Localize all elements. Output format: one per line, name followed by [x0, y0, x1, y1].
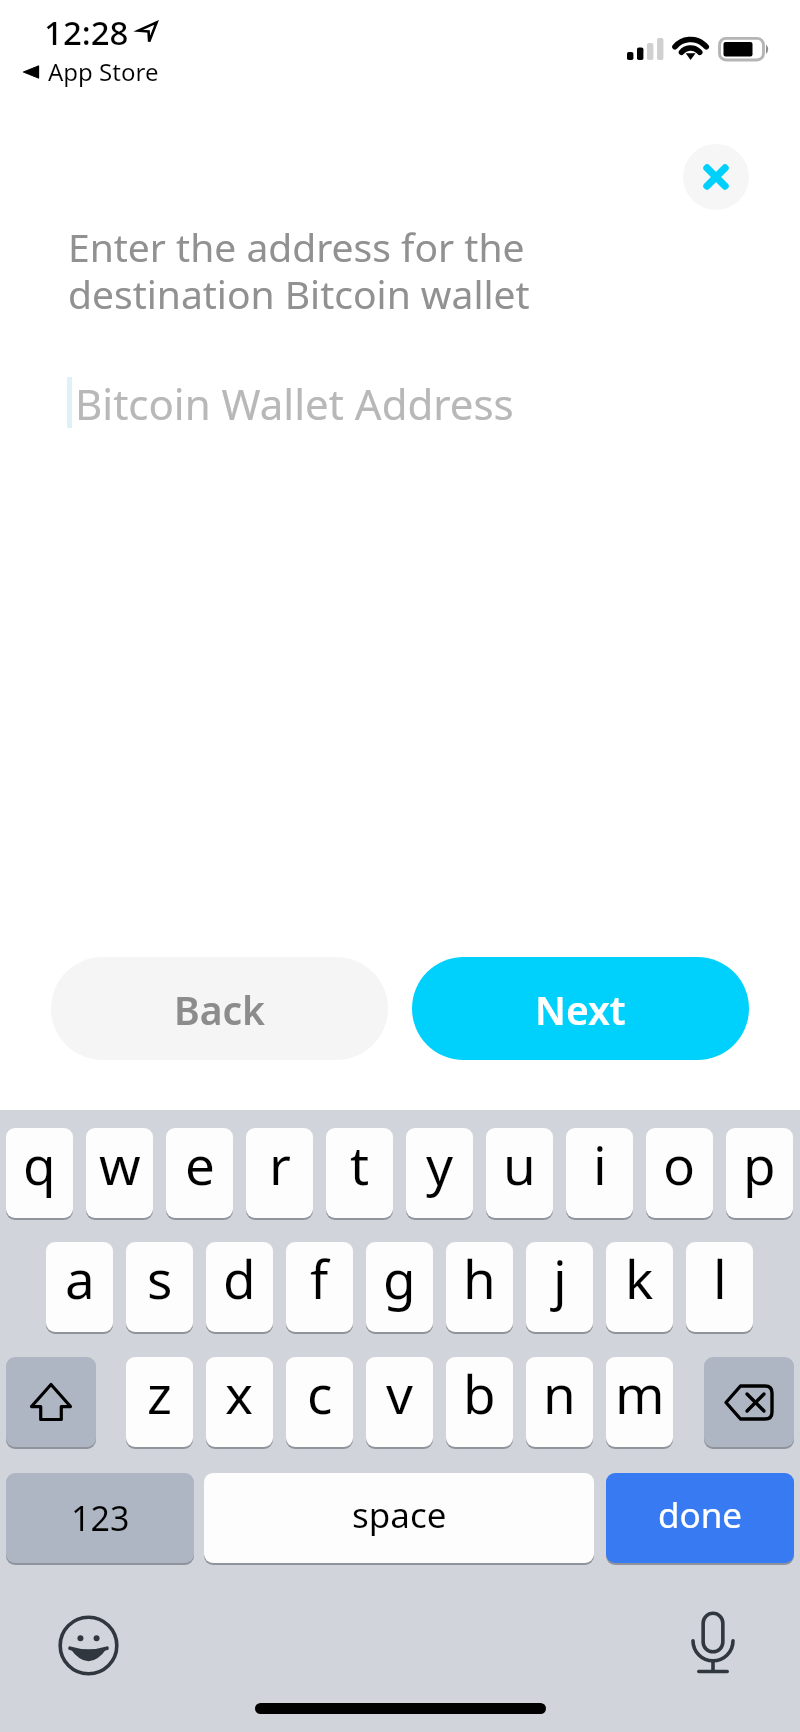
staticText: f [310, 1242, 329, 1314]
staticText: s [147, 1242, 173, 1314]
staticText: j [553, 1242, 567, 1314]
button[interactable]: v [366, 1357, 433, 1447]
staticText: i [593, 1128, 607, 1200]
button[interactable]: space [204, 1473, 594, 1563]
staticText: v [386, 1357, 413, 1429]
staticText: Bitcoin Wallet Address [75, 375, 514, 432]
staticText: z [147, 1357, 172, 1429]
button[interactable]: f [286, 1242, 353, 1332]
staticText: r [269, 1128, 291, 1200]
staticText: Back [174, 983, 266, 1036]
staticText: d [223, 1242, 256, 1314]
staticText: 123 [71, 1495, 130, 1541]
button[interactable]: a [46, 1242, 113, 1332]
button[interactable]: r [246, 1128, 313, 1218]
staticText: e [185, 1128, 215, 1200]
button[interactable]: h [446, 1242, 513, 1332]
staticText: g [383, 1242, 416, 1314]
button[interactable]: Shift [6, 1357, 96, 1447]
staticText: Next [535, 983, 626, 1036]
button[interactable]: s [126, 1242, 193, 1332]
button[interactable]: m [606, 1357, 673, 1447]
button[interactable]: q [6, 1128, 73, 1218]
staticText: c [307, 1357, 333, 1429]
button[interactable]: Back [51, 957, 388, 1060]
staticText: u [503, 1128, 536, 1200]
staticText: App Store [48, 55, 159, 88]
staticText: x [225, 1357, 254, 1429]
staticText: Enter the address for the destination Bi… [68, 220, 530, 320]
staticText: n [543, 1357, 576, 1429]
button[interactable]: b [446, 1357, 513, 1447]
button[interactable]: l [686, 1242, 753, 1332]
button[interactable]: n [526, 1357, 593, 1447]
staticText: m [615, 1357, 665, 1429]
button[interactable]: done [606, 1473, 794, 1563]
button[interactable]: o [646, 1128, 713, 1218]
button[interactable]: g [366, 1242, 433, 1332]
button[interactable]: j [526, 1242, 593, 1332]
button[interactable]: i [566, 1128, 633, 1218]
staticText: o [663, 1128, 696, 1200]
button[interactable]: c [286, 1357, 353, 1447]
button[interactable]: Backspace [704, 1357, 794, 1447]
button[interactable]: w [86, 1128, 153, 1218]
button[interactable]: t [326, 1128, 393, 1218]
staticText: a [65, 1242, 95, 1314]
button[interactable]: e [166, 1128, 233, 1218]
button[interactable]: Dictation [691, 1610, 735, 1674]
button[interactable]: x [206, 1357, 273, 1447]
button[interactable]: p [726, 1128, 793, 1218]
staticText: w [99, 1128, 141, 1200]
button[interactable]: u [486, 1128, 553, 1218]
button[interactable]: k [606, 1242, 673, 1332]
staticText: space [352, 1491, 447, 1539]
staticText: p [743, 1128, 776, 1200]
staticText: k [625, 1242, 654, 1314]
staticText: 12:28 [44, 10, 129, 55]
button[interactable]: Emoji [58, 1615, 119, 1676]
staticText: y [426, 1128, 454, 1200]
staticText: h [463, 1242, 496, 1314]
button[interactable]: Next [412, 957, 749, 1060]
button[interactable]: d [206, 1242, 273, 1332]
staticText: t [350, 1128, 370, 1200]
button[interactable]: Close [683, 144, 749, 210]
staticText: l [713, 1242, 727, 1314]
button[interactable]: y [406, 1128, 473, 1218]
staticText: done [658, 1491, 743, 1539]
staticText: b [463, 1357, 496, 1429]
staticText: q [23, 1128, 56, 1200]
button[interactable]: 123 [6, 1473, 194, 1563]
button[interactable]: z [126, 1357, 193, 1447]
